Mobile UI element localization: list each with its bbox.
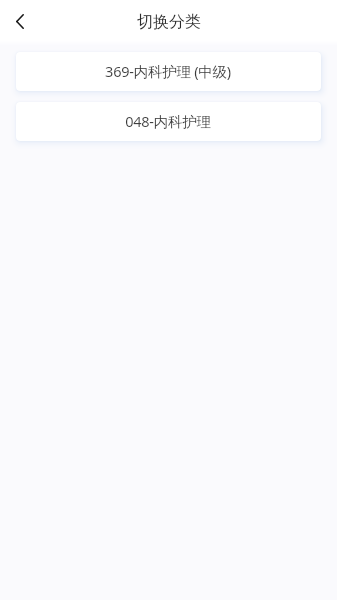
staticText: 369-内科护理 (中级) bbox=[105, 61, 231, 81]
button[interactable]: Back bbox=[0, 0, 40, 40]
button[interactable]: 048-内科护理 bbox=[16, 102, 321, 141]
staticText: 048-内科护理 bbox=[125, 111, 211, 131]
button[interactable]: 369-内科护理 (中级) bbox=[16, 52, 321, 91]
staticText: 切换分类 bbox=[137, 12, 201, 32]
